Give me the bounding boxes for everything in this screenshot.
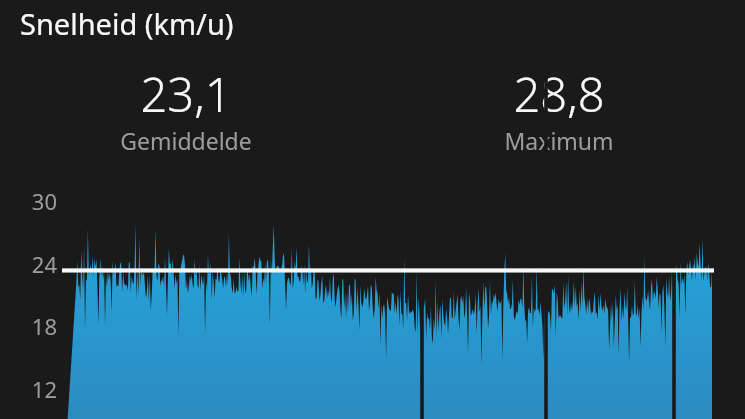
staticText: 30 [31,186,57,216]
staticText: Maximum [504,125,614,156]
staticText: 18 [31,311,57,341]
staticText: 28,8 [513,62,605,126]
staticText: 24 [31,249,57,279]
staticText: Snelheid (km/u) [20,4,234,43]
staticText: Gemiddelde [120,125,252,156]
staticText: 23,1 [140,62,232,126]
staticText: 12 [31,374,57,404]
